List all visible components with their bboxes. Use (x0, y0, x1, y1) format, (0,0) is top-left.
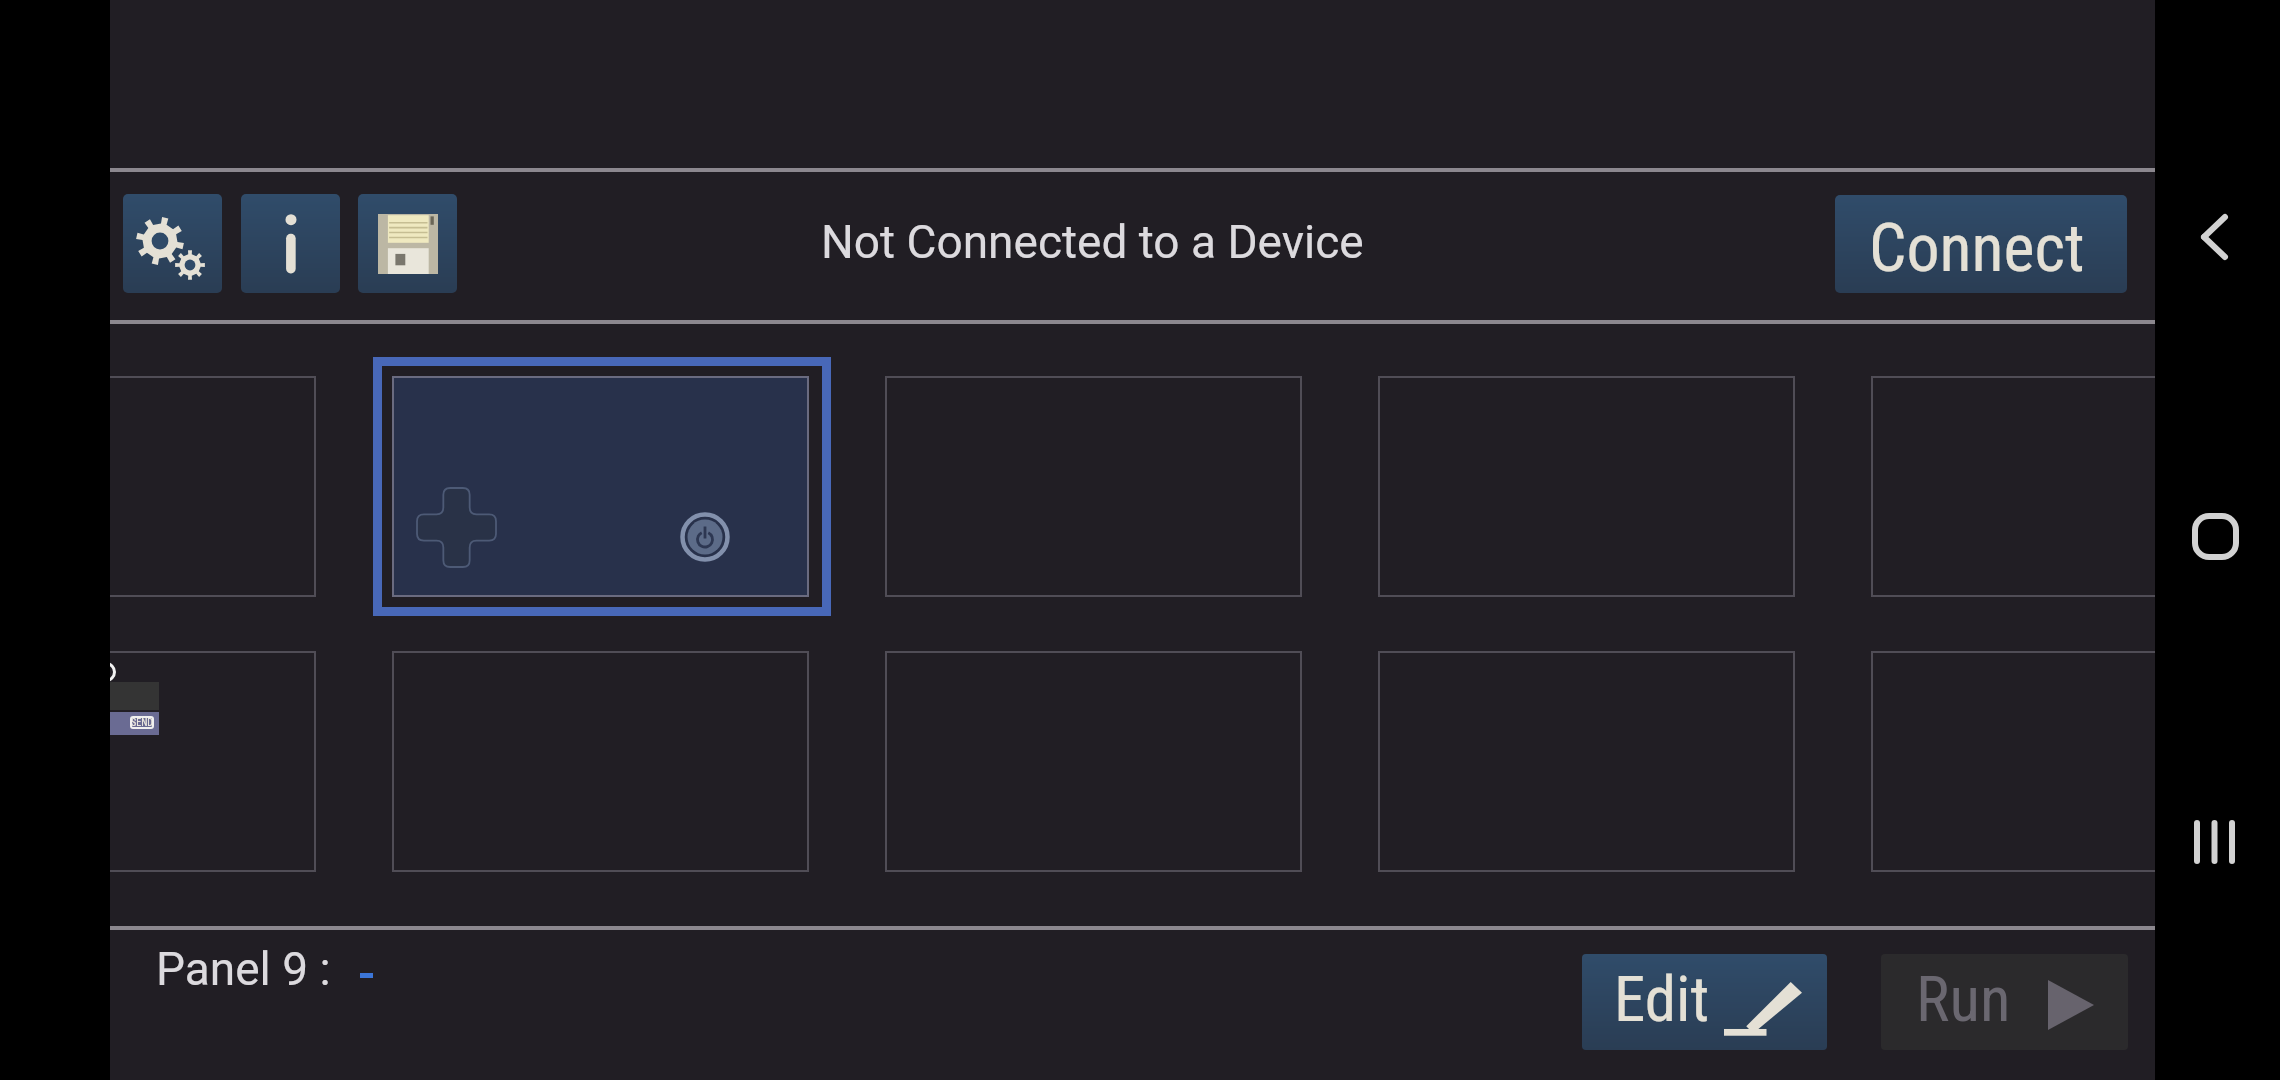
staticText: Panel 9 : (156, 942, 331, 996)
button[interactable]: Tool (123, 194, 222, 293)
staticText: Connect (1869, 210, 2085, 287)
button[interactable]: Home (2170, 491, 2260, 581)
staticText: Not Connected to a Device (821, 215, 1364, 269)
button[interactable]: Tool (241, 194, 340, 293)
staticText: Edit (1614, 963, 1710, 1037)
button[interactable] (885, 651, 1302, 872)
button[interactable]: Run (1881, 954, 2128, 1050)
button[interactable]: Connect (1835, 195, 2127, 293)
button[interactable]: Recents (2169, 797, 2259, 887)
staticText: SEND (131, 717, 154, 729)
button[interactable]: Back (2169, 192, 2259, 282)
button[interactable] (1378, 376, 1795, 597)
button[interactable] (885, 376, 1302, 597)
button[interactable] (110, 376, 316, 597)
button[interactable] (1871, 651, 2155, 872)
button[interactable] (1378, 651, 1795, 872)
button[interactable]: SEND (110, 651, 316, 872)
button[interactable]: Tool (358, 194, 457, 293)
button[interactable] (392, 651, 809, 872)
button[interactable]: Edit (1582, 954, 1827, 1050)
button[interactable] (373, 357, 831, 616)
staticText: Run (1916, 963, 2011, 1037)
button[interactable] (1871, 376, 2155, 597)
